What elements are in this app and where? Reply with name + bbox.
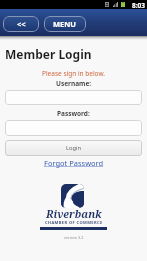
staticText: CHAMBER OF COMMERCE — [45, 220, 103, 225]
button[interactable]: MENU — [44, 16, 86, 32]
staticText: Login — [66, 144, 82, 152]
staticText: Password: — [57, 109, 90, 118]
staticText: MENU — [53, 19, 77, 29]
button[interactable] — [5, 90, 142, 105]
button[interactable]: Login — [5, 140, 142, 156]
staticText: Member Login — [5, 46, 92, 62]
staticText: Forgot Password — [44, 158, 104, 168]
button[interactable]: Forgot Password — [44, 158, 104, 168]
staticText: Riverbank — [46, 207, 102, 221]
staticText: version 3.2 — [64, 235, 84, 240]
button[interactable]: Back — [3, 16, 39, 32]
button[interactable] — [5, 120, 142, 136]
staticText: Username: — [56, 79, 92, 88]
staticText: 8:03 — [132, 1, 145, 10]
staticText: Please sign in below. — [42, 69, 106, 78]
staticText: << — [17, 19, 26, 29]
